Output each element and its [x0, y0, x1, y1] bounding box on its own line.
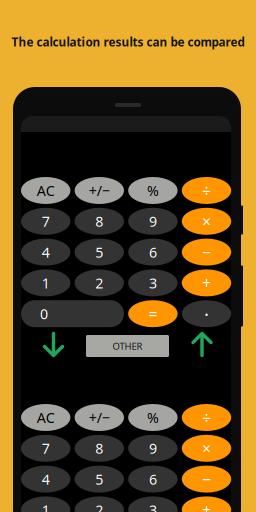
button[interactable]: %	[128, 404, 178, 431]
staticText: ÷	[202, 407, 211, 428]
button[interactable]: 6	[128, 239, 178, 266]
button[interactable]: 9	[128, 435, 178, 462]
button[interactable]: −	[182, 466, 231, 493]
staticText: 9	[149, 212, 157, 231]
staticText: 1	[42, 500, 50, 512]
button[interactable]: 1	[21, 269, 70, 296]
staticText: %	[147, 408, 159, 427]
staticText: 9	[149, 439, 157, 458]
button[interactable]: ÷	[182, 404, 231, 431]
button[interactable]: =	[128, 300, 178, 327]
staticText: 5	[95, 469, 103, 489]
staticText: +/−	[89, 181, 110, 200]
staticText: 8	[95, 212, 103, 231]
button[interactable]: AC	[21, 404, 70, 431]
staticText: %	[147, 181, 159, 200]
button[interactable]: +	[182, 269, 231, 296]
button[interactable]: 8	[75, 435, 124, 462]
staticText: ×	[202, 437, 211, 459]
button[interactable]: 3	[128, 269, 178, 296]
button[interactable]: OTHER	[86, 335, 169, 357]
staticText: AC	[37, 408, 55, 427]
staticText: 8	[95, 439, 103, 458]
button[interactable]: ×	[182, 208, 231, 235]
button[interactable]: 3	[128, 496, 178, 512]
staticText: 3	[149, 273, 157, 293]
staticText: OTHER	[112, 340, 142, 352]
button[interactable]: 2	[75, 269, 124, 296]
staticText: 2	[95, 500, 103, 512]
button[interactable]: 5	[75, 466, 124, 493]
staticText: −	[202, 241, 211, 263]
staticText: 0	[40, 304, 48, 323]
staticText: 5	[95, 242, 103, 262]
button[interactable]: +	[182, 496, 231, 512]
button[interactable]: 1	[21, 496, 70, 512]
staticText: 7	[42, 212, 50, 231]
staticText: =	[148, 303, 157, 325]
button[interactable]: 7	[21, 208, 70, 235]
staticText: +	[202, 499, 211, 512]
staticText: ÷	[202, 180, 211, 201]
button[interactable]: 5	[75, 239, 124, 266]
button[interactable]: 2	[75, 496, 124, 512]
button[interactable]: %	[128, 177, 178, 204]
staticText: +/−	[89, 408, 110, 427]
staticText: 6	[149, 469, 157, 489]
staticText: 4	[42, 242, 50, 262]
button[interactable]: 7	[21, 435, 70, 462]
button[interactable]: 8	[75, 208, 124, 235]
staticText: 2	[95, 273, 103, 293]
button[interactable]: 9	[128, 208, 178, 235]
staticText: +	[202, 272, 211, 294]
button[interactable]: +/−	[75, 177, 124, 204]
button[interactable]: +/−	[75, 404, 124, 431]
button[interactable]: 0	[21, 300, 124, 327]
button[interactable]: ÷	[182, 177, 231, 204]
button[interactable]: ×	[182, 435, 231, 462]
button[interactable]: AC	[21, 177, 70, 204]
button[interactable]: −	[182, 239, 231, 266]
staticText: 7	[42, 439, 50, 458]
button[interactable]: 4	[21, 466, 70, 493]
staticText: ×	[202, 210, 211, 232]
button[interactable]: Scroll down	[42, 331, 64, 357]
staticText: The calculation results can be compared	[11, 34, 244, 50]
staticText: −	[202, 468, 211, 490]
staticText: ·	[204, 301, 209, 326]
staticText: 4	[42, 469, 50, 489]
button[interactable]: 4	[21, 239, 70, 266]
staticText: AC	[37, 181, 55, 200]
staticText: 1	[42, 273, 50, 293]
staticText: 6	[149, 242, 157, 262]
button[interactable]: Scroll up	[191, 331, 213, 357]
button[interactable]: ·	[182, 300, 231, 327]
staticText: 3	[149, 500, 157, 512]
button[interactable]: 6	[128, 466, 178, 493]
